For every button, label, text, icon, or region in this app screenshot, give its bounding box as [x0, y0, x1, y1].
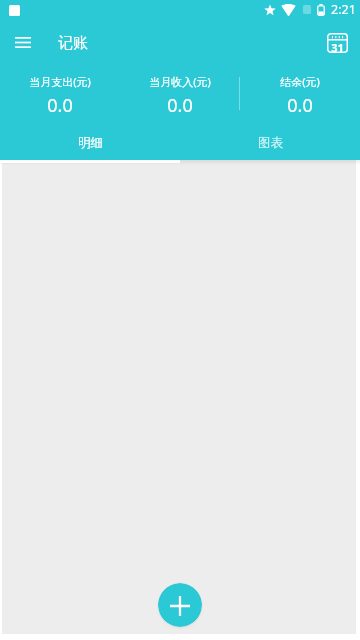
staticText: 明细 — [78, 135, 103, 151]
staticText: 2:21 — [331, 1, 356, 18]
button[interactable]: Add record — [158, 583, 202, 627]
staticText: 31 — [331, 40, 344, 55]
staticText: 结余(元) — [280, 74, 320, 89]
staticText: 0.0 — [167, 93, 193, 118]
button[interactable]: Calendar — [320, 26, 354, 60]
button[interactable]: 图表 — [180, 126, 360, 160]
staticText: 0.0 — [287, 93, 313, 118]
staticText: 图表 — [258, 135, 283, 151]
staticText: 0.0 — [47, 93, 73, 118]
staticText: 当月收入(元) — [149, 74, 211, 89]
staticText: 记账 — [58, 34, 88, 53]
staticText: 当月支出(元) — [29, 74, 91, 89]
button[interactable]: 明细 — [0, 126, 180, 160]
button[interactable]: Menu — [7, 27, 39, 59]
